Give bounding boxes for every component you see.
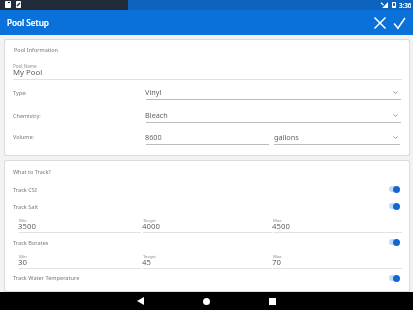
staticText: Target	[143, 217, 156, 223]
staticText: 30	[18, 257, 27, 268]
staticText: Pool Setup	[7, 17, 49, 28]
button[interactable]: Home	[173, 292, 239, 310]
button[interactable]: 8600	[141, 130, 269, 150]
staticText: Track CSI	[13, 186, 37, 194]
staticText: Max	[273, 217, 282, 223]
staticText: 45	[142, 257, 151, 268]
staticText: Type:	[13, 89, 27, 96]
staticText: Min	[19, 253, 27, 259]
staticText: Track Borates	[13, 239, 49, 247]
button[interactable]: Save	[389, 13, 409, 33]
staticText: Track Water Temperature	[13, 274, 80, 282]
staticText: Vinyl	[145, 87, 162, 97]
staticText: Max	[273, 253, 282, 259]
staticText: 3500	[18, 221, 36, 232]
staticText: My Pool	[13, 67, 43, 78]
staticText: 4500	[272, 221, 290, 232]
button[interactable]: Type:	[9, 85, 405, 105]
staticText: 4000	[142, 221, 160, 232]
button[interactable]: Recent apps	[239, 292, 305, 310]
staticText: 8600	[145, 132, 162, 142]
button[interactable]: Discard	[370, 13, 390, 33]
staticText: What to Track?	[13, 168, 51, 175]
staticText: Min	[19, 217, 27, 223]
staticText: 3:36	[399, 1, 412, 9]
staticText: Volume:	[13, 133, 35, 140]
button[interactable]: Back	[107, 292, 173, 310]
staticText: Pool Information	[14, 46, 58, 53]
button[interactable]	[387, 199, 409, 213]
button[interactable]	[387, 182, 409, 196]
button[interactable]	[387, 271, 409, 285]
button[interactable]: gallons	[269, 130, 405, 150]
staticText: Pool Name	[13, 63, 37, 69]
staticText: Target	[143, 253, 156, 259]
staticText: 70	[272, 257, 281, 268]
button[interactable]	[387, 235, 409, 249]
staticText: Chemistry:	[13, 112, 41, 119]
staticText: gallons	[274, 132, 299, 142]
staticText: Bleach	[145, 110, 168, 120]
button[interactable]: Chemistry:	[9, 108, 405, 128]
staticText: Track Salt	[13, 203, 38, 211]
